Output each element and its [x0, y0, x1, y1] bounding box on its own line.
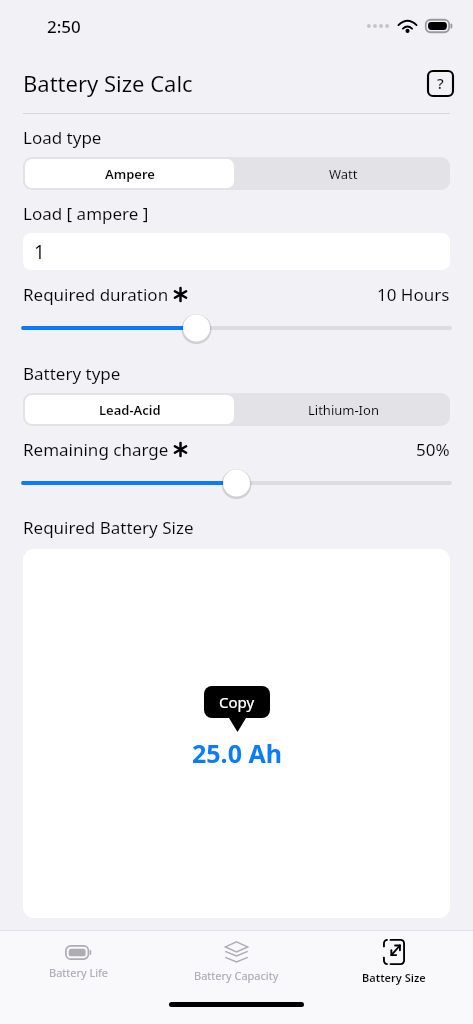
- button[interactable]: Lead-Acid: [25, 395, 234, 424]
- staticText: Copy: [219, 692, 255, 712]
- staticText: Load [ ampere ]: [23, 202, 149, 225]
- button[interactable]: Battery Life: [0, 931, 157, 993]
- staticText: 1: [34, 239, 45, 265]
- staticText: 50%: [416, 438, 450, 461]
- button[interactable]: Watt: [236, 157, 450, 190]
- button[interactable]: Help: [425, 68, 455, 98]
- button[interactable]: [23, 469, 450, 497]
- staticText: Lithium-Ion: [308, 401, 379, 419]
- staticText: Watt: [329, 165, 358, 183]
- button[interactable]: Ampere: [25, 159, 234, 188]
- staticText: Required duration: [23, 283, 169, 306]
- staticText: Load type: [23, 126, 102, 149]
- staticText: Battery type: [23, 362, 121, 385]
- staticText: Battery Size Calc: [23, 68, 193, 98]
- staticText: Ampere: [105, 165, 155, 183]
- staticText: Remaining charge: [23, 438, 169, 461]
- button[interactable]: Lithium-Ion: [236, 393, 450, 426]
- button[interactable]: Copy: [204, 686, 270, 732]
- button[interactable]: [23, 314, 450, 342]
- button[interactable]: Battery Capacity: [157, 931, 315, 993]
- button[interactable]: 1: [23, 233, 450, 270]
- staticText: Battery Life: [49, 965, 109, 980]
- staticText: Battery Size: [362, 970, 426, 985]
- staticText: Required Battery Size: [23, 516, 194, 539]
- staticText: ?: [437, 73, 444, 93]
- staticText: Lead-Acid: [99, 401, 161, 419]
- staticText: 25.0 Ah: [192, 736, 282, 770]
- button[interactable]: Battery Size: [315, 931, 473, 993]
- staticText: 2:50: [47, 15, 81, 38]
- staticText: Battery Capacity: [194, 968, 279, 983]
- staticText: 10 Hours: [377, 283, 450, 306]
